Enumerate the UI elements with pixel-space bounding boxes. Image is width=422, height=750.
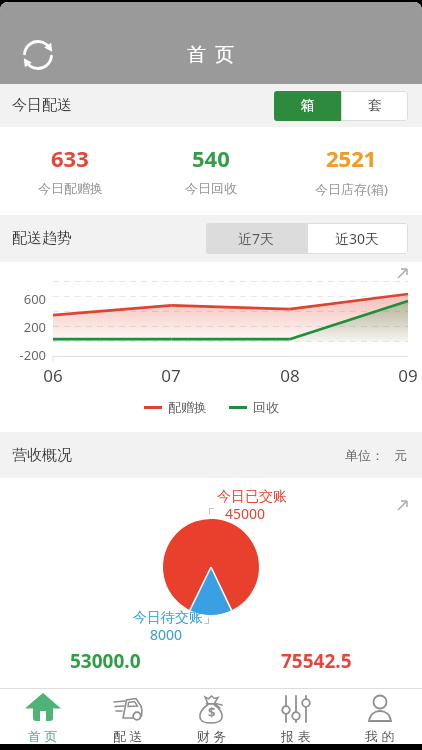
staticText: 今日配赠换: [38, 180, 103, 196]
staticText: 我 的: [365, 727, 395, 744]
button[interactable]: 首 页: [0, 689, 85, 744]
staticText: -200: [8, 346, 46, 364]
staticText: 配赠换: [168, 399, 207, 415]
staticText: 200: [8, 318, 46, 336]
staticText: 首 页: [187, 41, 236, 67]
staticText: 单位： 元: [345, 446, 408, 464]
staticText: 633: [51, 143, 89, 173]
staticText: 540: [192, 143, 230, 173]
button[interactable]: 套: [341, 91, 408, 121]
staticText: 2521: [326, 143, 377, 173]
staticText: 配 送: [113, 727, 143, 744]
button[interactable]: 我 的: [338, 689, 422, 744]
button[interactable]: $: [170, 689, 254, 744]
staticText: 45000: [225, 504, 266, 523]
button[interactable]: 633: [0, 127, 140, 215]
button[interactable]: 近30天: [307, 223, 408, 254]
staticText: 今日回收: [185, 180, 237, 196]
staticText: 营收概况: [12, 446, 72, 465]
button[interactable]: 箱: [274, 91, 341, 121]
staticText: 07: [151, 364, 191, 387]
button[interactable]: 2521: [281, 127, 422, 215]
staticText: 600: [8, 290, 46, 308]
staticText: 75542.5: [281, 648, 352, 674]
staticText: 今日店存(箱): [315, 180, 388, 198]
button[interactable]: 配 送: [85, 689, 170, 744]
staticText: 「: [202, 506, 215, 522]
staticText: 06: [33, 364, 73, 387]
staticText: 报 表: [281, 727, 311, 744]
staticText: 财 务: [197, 727, 227, 744]
staticText: 回收: [253, 399, 279, 415]
staticText: 8000: [150, 625, 183, 644]
staticText: 53000.0: [70, 648, 141, 674]
button[interactable]: [22, 39, 54, 71]
button[interactable]: 540: [140, 127, 281, 215]
staticText: 」: [203, 610, 216, 626]
staticText: 近7天: [238, 229, 275, 248]
staticText: 今日待交账: [133, 609, 203, 627]
staticText: 近30天: [335, 229, 380, 248]
staticText: 09: [388, 364, 422, 387]
staticText: $: [208, 703, 216, 721]
button[interactable]: 近7天: [206, 223, 307, 254]
staticText: 首 页: [28, 727, 58, 744]
staticText: 今日已交账: [217, 488, 287, 506]
staticText: 配送趋势: [12, 229, 72, 248]
staticText: 套: [368, 97, 382, 115]
staticText: 箱: [301, 97, 315, 115]
staticText: 08: [270, 364, 310, 387]
staticText: 今日配送: [12, 96, 72, 115]
button[interactable]: 报 表: [254, 689, 338, 744]
